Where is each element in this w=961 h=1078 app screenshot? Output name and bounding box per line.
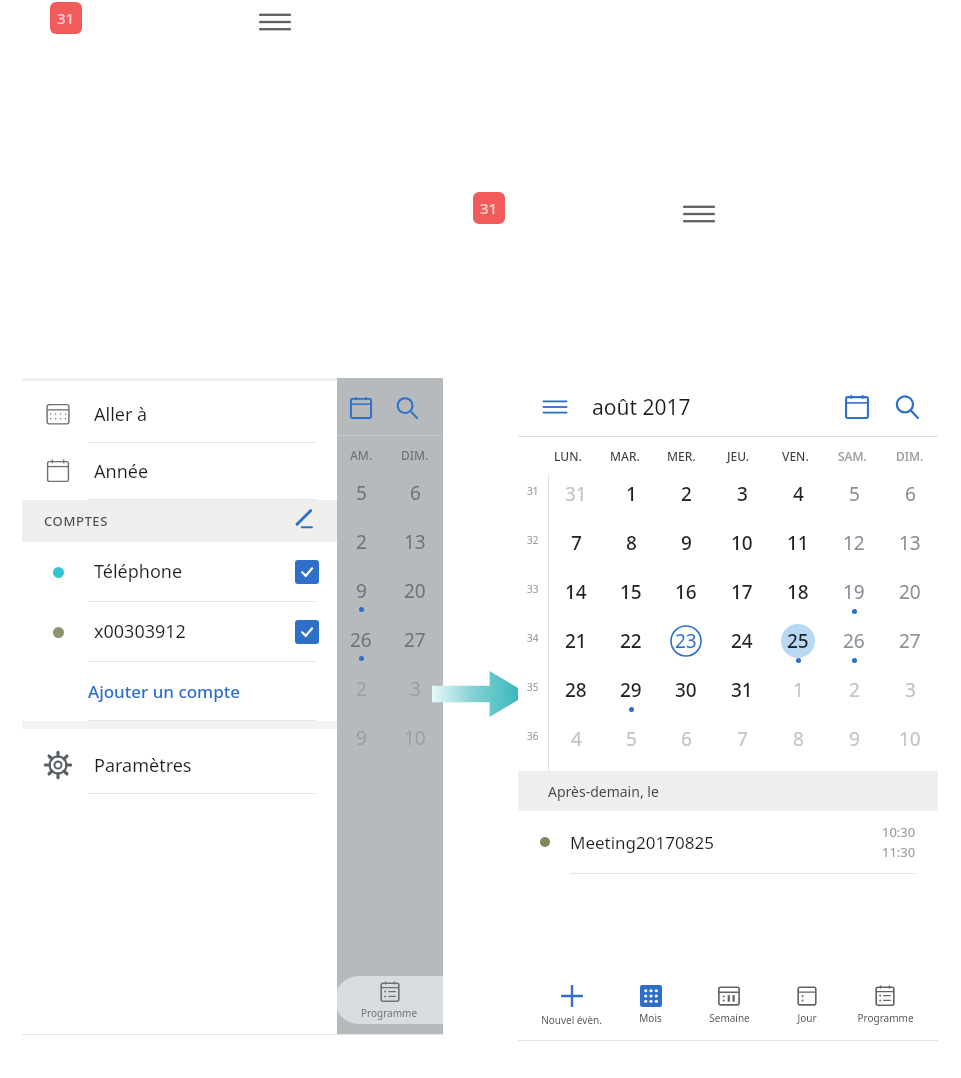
button[interactable]: 3 — [725, 477, 759, 511]
button[interactable]: x00303912 — [22, 602, 337, 662]
button[interactable]: 25 — [781, 624, 815, 658]
staticText: 1 — [626, 481, 637, 507]
staticText: 34 — [527, 631, 539, 645]
button[interactable]: Mois — [611, 976, 690, 1034]
button[interactable]: COMPTES — [22, 500, 337, 542]
button[interactable]: Menu — [681, 196, 717, 232]
button[interactable]: Rechercher — [894, 394, 920, 420]
staticText: 6 — [410, 480, 421, 506]
button[interactable]: 12 — [837, 526, 871, 560]
staticText: JEU. — [727, 448, 750, 464]
button[interactable]: 27 — [893, 624, 927, 658]
staticText: 2 — [681, 481, 692, 507]
button[interactable]: 11 — [781, 526, 815, 560]
button[interactable]: Menu — [540, 392, 570, 422]
button[interactable]: 18 — [781, 575, 815, 609]
button[interactable]: 31 — [725, 673, 759, 707]
button[interactable]: 7 — [725, 722, 759, 756]
button[interactable]: 28 — [559, 673, 593, 707]
button[interactable]: Téléphone — [22, 542, 337, 602]
button[interactable]: Nouvel évèn. — [532, 976, 611, 1034]
staticText: 24 — [731, 628, 753, 654]
button[interactable]: 30 — [669, 673, 703, 707]
staticText: 28 — [565, 677, 587, 703]
button[interactable]: 6 — [669, 722, 703, 756]
button[interactable]: Ajouter un compte — [22, 662, 337, 720]
button[interactable]: 13 — [893, 526, 927, 560]
button[interactable]: 16 — [669, 575, 703, 609]
button[interactable]: Aujourd'hui — [844, 394, 870, 420]
button[interactable]: 31 — [559, 477, 593, 511]
button[interactable]: Calendrier — [50, 2, 82, 34]
button[interactable]: 9 — [837, 722, 871, 756]
button[interactable]: 17 — [725, 575, 759, 609]
staticText: 17 — [731, 579, 753, 605]
staticText: Après-demain, le — [548, 782, 659, 801]
button[interactable]: Programme — [846, 976, 924, 1034]
staticText: 9 — [356, 578, 367, 604]
button[interactable]: Menu — [541, 393, 569, 421]
button[interactable]: 1 — [781, 673, 815, 707]
button[interactable]: Semaine — [690, 976, 768, 1034]
staticText: Téléphone — [94, 559, 183, 584]
button[interactable]: 6 — [893, 477, 927, 511]
button[interactable]: Jour — [768, 976, 846, 1034]
staticText: 9 — [849, 726, 860, 752]
button[interactable]: 10 — [725, 526, 759, 560]
staticText: Semaine — [709, 1011, 750, 1025]
staticText: 33 — [527, 582, 539, 596]
staticText: x00303912 — [94, 619, 186, 644]
button[interactable]: 15 — [614, 575, 648, 609]
button[interactable]: 19 — [837, 575, 871, 609]
staticText: 31 — [480, 198, 498, 218]
button[interactable]: Paramètres — [22, 737, 337, 794]
button[interactable]: 24 — [725, 624, 759, 658]
button[interactable]: Calendrier — [473, 192, 505, 224]
button[interactable]: 5 — [837, 477, 871, 511]
staticText: 4 — [793, 481, 804, 507]
button[interactable]: 4 — [559, 722, 593, 756]
staticText: 9 — [356, 725, 367, 751]
button[interactable]: 21 — [559, 624, 593, 658]
staticText: MAR. — [610, 448, 640, 464]
button[interactable]: 2 — [837, 673, 871, 707]
button[interactable]: 1 — [614, 477, 648, 511]
staticText: AM. — [350, 447, 373, 463]
button[interactable]: 3 — [893, 673, 927, 707]
staticText: 2 — [849, 677, 860, 703]
staticText: 16 — [675, 579, 697, 605]
staticText: 18 — [787, 579, 809, 605]
button[interactable]: 22 — [614, 624, 648, 658]
button[interactable]: 14 — [559, 575, 593, 609]
staticText: COMPTES — [44, 512, 108, 530]
button[interactable]: 29 — [614, 673, 648, 707]
button[interactable]: 8 — [614, 526, 648, 560]
button[interactable]: 5 — [614, 722, 648, 756]
button[interactable]: 9 — [669, 526, 703, 560]
button[interactable]: Menu — [257, 4, 293, 40]
button[interactable]: 8 — [781, 722, 815, 756]
button[interactable]: 2 — [669, 477, 703, 511]
button[interactable]: Meeting20170825 — [518, 811, 938, 874]
staticText: 7 — [571, 530, 582, 556]
button[interactable]: Aller à — [22, 386, 337, 443]
staticText: 6 — [681, 726, 692, 752]
staticText: 15 — [620, 579, 642, 605]
button[interactable]: Aujourd'hui — [349, 396, 373, 420]
button[interactable]: Modifier les comptes — [293, 508, 319, 534]
staticText: Année — [94, 459, 149, 484]
button[interactable]: 10 — [893, 722, 927, 756]
staticText: 27 — [899, 628, 921, 654]
button[interactable]: 23 — [669, 624, 703, 658]
button[interactable]: 26 — [837, 624, 871, 658]
button[interactable]: 4 — [781, 477, 815, 511]
button[interactable]: Programme — [335, 976, 443, 1024]
staticText: 26 — [843, 628, 865, 654]
button[interactable]: Année — [22, 443, 337, 500]
button[interactable]: 7 — [559, 526, 593, 560]
staticText: LUN. — [554, 448, 582, 464]
staticText: 30 — [675, 677, 697, 703]
button[interactable]: Rechercher — [395, 396, 419, 420]
button[interactable]: 20 — [893, 575, 927, 609]
staticText: Jour — [797, 1011, 817, 1025]
